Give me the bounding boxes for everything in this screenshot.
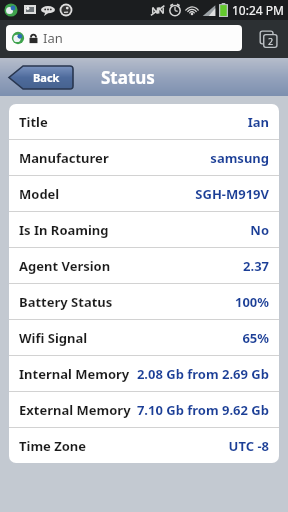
button[interactable]: Time Zone xyxy=(9,428,279,463)
staticText: Agent Version xyxy=(19,257,111,275)
staticText: 7.10 Gb from 9.62 Gb xyxy=(136,401,269,419)
button[interactable]: Tabs xyxy=(258,28,280,50)
staticText: 100% xyxy=(234,293,269,311)
staticText: Internal Memory xyxy=(19,365,130,383)
button[interactable]: Ian xyxy=(6,25,242,51)
staticText: Ian xyxy=(247,113,269,131)
button[interactable]: Manufacturer xyxy=(9,140,279,175)
button[interactable]: Title xyxy=(9,104,279,139)
button[interactable]: Battery Status xyxy=(9,284,279,319)
button[interactable]: Internal Memory xyxy=(9,356,279,391)
staticText: SGH-M919V xyxy=(195,185,269,203)
staticText: Battery Status xyxy=(19,293,113,311)
button[interactable]: Wifi Signal xyxy=(9,320,279,355)
staticText: 65% xyxy=(242,329,269,347)
button[interactable]: Model xyxy=(9,176,279,211)
button[interactable]: Agent Version xyxy=(9,248,279,283)
staticText: Is In Roaming xyxy=(19,221,109,239)
staticText: Time Zone xyxy=(19,437,87,455)
staticText: 2.37 xyxy=(243,257,269,275)
staticText: samsung xyxy=(210,149,269,167)
staticText: External Memory xyxy=(19,401,131,419)
button[interactable]: Is In Roaming xyxy=(9,212,279,247)
staticText: Manufacturer xyxy=(19,149,109,167)
staticText: UTC -8 xyxy=(228,437,269,455)
button[interactable]: External Memory xyxy=(9,392,279,427)
staticText: 2.08 Gb from 2.69 Gb xyxy=(136,365,269,383)
staticText: Ian xyxy=(43,29,63,47)
button[interactable]: Back xyxy=(9,66,73,89)
staticText: Model xyxy=(19,185,60,203)
staticText: Back xyxy=(33,70,60,85)
staticText: Wifi Signal xyxy=(19,329,88,347)
staticText: 10:24 PM xyxy=(232,2,284,18)
staticText: No xyxy=(250,221,269,239)
staticText: 2 xyxy=(268,35,274,47)
staticText: Title xyxy=(19,113,48,131)
staticText: Status xyxy=(101,66,155,89)
